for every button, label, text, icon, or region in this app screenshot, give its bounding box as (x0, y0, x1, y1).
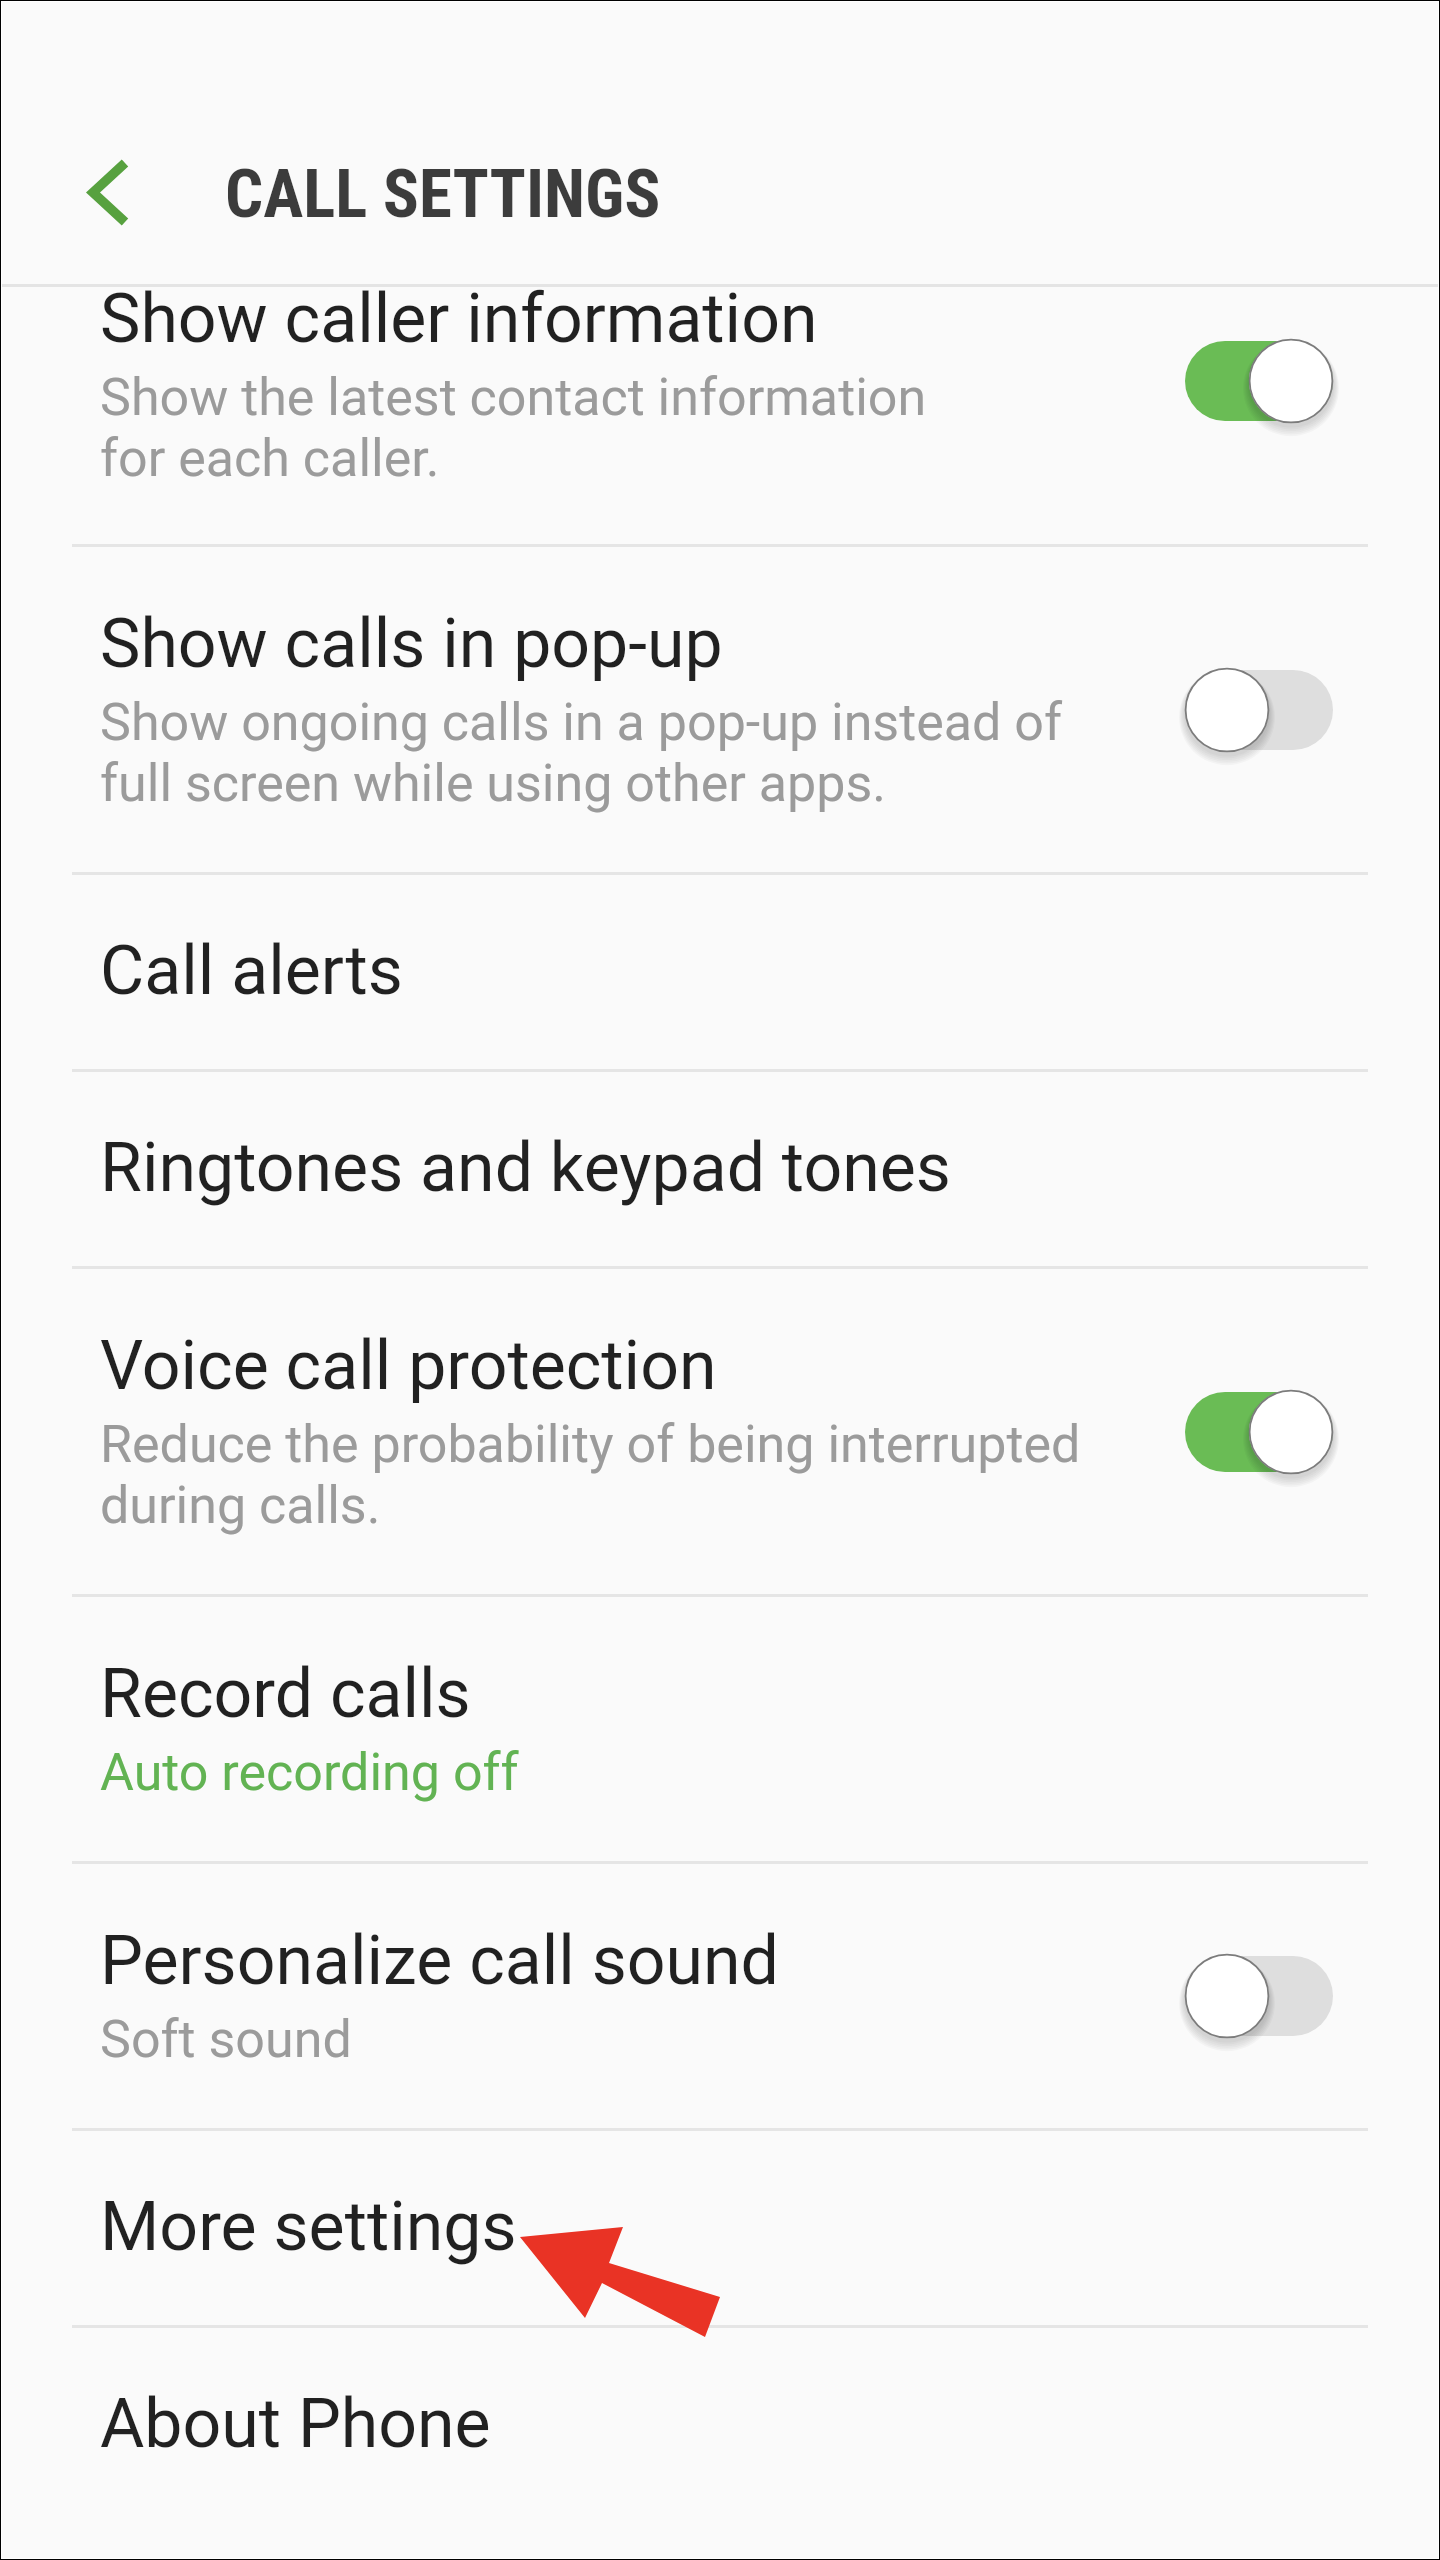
button[interactable]: Switch, off (1164, 1936, 1354, 2056)
button[interactable]: Ringtones and keypad tones (0, 1072, 1440, 1266)
button[interactable]: Show calls in pop-up (0, 547, 1440, 872)
staticText: Show ongoing calls in a pop-up instead o… (100, 692, 1063, 814)
staticText: Personalize call sound (100, 1920, 779, 2001)
staticText: Show caller information (100, 278, 818, 359)
button[interactable]: More settings (0, 2131, 1440, 2325)
button[interactable]: Switch, on (1164, 1372, 1354, 1492)
staticText: More settings (100, 2186, 517, 2267)
button[interactable]: Show caller information (0, 285, 1440, 544)
button[interactable]: Switch, off (1164, 650, 1354, 770)
staticText: Call alerts (100, 930, 403, 1011)
button[interactable]: Switch, on (1164, 321, 1354, 441)
button[interactable]: About Phone (0, 2328, 1440, 2560)
button[interactable]: Navigate back (54, 136, 170, 252)
button[interactable]: Call alerts (0, 875, 1440, 1069)
staticText: Soft sound (100, 2009, 352, 2070)
staticText: Show the latest contact information for … (100, 367, 927, 489)
staticText: Record calls (100, 1653, 471, 1734)
staticText: Ringtones and keypad tones (100, 1127, 951, 1208)
staticText: Reduce the probability of being interrup… (100, 1414, 1081, 1536)
staticText: About Phone (100, 2383, 491, 2464)
staticText: Auto recording off (100, 1742, 519, 1803)
staticText: CALL SETTINGS (225, 155, 661, 234)
button[interactable]: Record calls (0, 1597, 1440, 1861)
staticText: Show calls in pop-up (100, 603, 723, 684)
button[interactable]: Voice call protection (0, 1269, 1440, 1594)
button[interactable]: Personalize call sound (0, 1864, 1440, 2128)
staticText: Voice call protection (100, 1325, 717, 1406)
